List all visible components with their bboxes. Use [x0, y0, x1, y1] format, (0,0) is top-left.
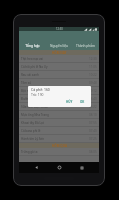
staticText: 12:30: [89, 57, 97, 61]
staticText: Đường trắng RE: [21, 97, 44, 101]
staticText: Nguyên liệu: [50, 44, 68, 48]
staticText: HÔM QUA: [52, 144, 67, 148]
staticText: 08:40: [89, 97, 97, 101]
button[interactable]: HỦY: [64, 99, 75, 105]
staticText: Sữa tươi Mộc Châu: [21, 105, 48, 109]
staticText: Rau cải xanh: [21, 73, 39, 77]
staticText: 09:12: [89, 89, 97, 93]
staticText: Bột mì số 13: [21, 89, 39, 93]
staticText: Thịt heo nạc vai: [21, 57, 44, 61]
button[interactable]: Bột mì số 13: [19, 87, 99, 94]
staticText: HÔM NAY: [52, 51, 67, 55]
staticText: Trứng gà ta: [21, 150, 38, 154]
staticText: 09:48: [89, 81, 97, 85]
button[interactable]: Thịt heo nạc vai: [19, 55, 99, 62]
staticText: 08:05: [89, 150, 97, 154]
button[interactable]: Home: [55, 163, 64, 172]
button[interactable]: Cá basa phi lê: [19, 127, 99, 134]
button[interactable]: Tổng hợp: [19, 42, 45, 50]
staticText: Tổng hợp: [25, 44, 40, 48]
button[interactable]: OK: [78, 99, 87, 105]
button[interactable]: Đường trắng RE: [19, 95, 99, 102]
staticText: Thành phẩm: [76, 44, 95, 48]
staticText: Cà phê: 160: [31, 87, 50, 92]
staticText: Cá hồi phi lê Na Uy: [21, 65, 48, 69]
button[interactable]: Hành tím Lý Sơn: [19, 135, 99, 142]
button[interactable]: Thành phẩm: [72, 42, 99, 50]
staticText: Cá basa phi lê: [21, 129, 41, 133]
button[interactable]: Mực ống Nha Trang: [19, 111, 99, 118]
button[interactable]: Cá hồi phi lê Na Uy: [19, 63, 99, 70]
staticText: OK: [80, 100, 85, 104]
button[interactable]: Rau cải xanh: [19, 71, 99, 78]
staticText: 08:22: [89, 105, 97, 109]
staticText: Khoai tây Đà Lạt: [21, 121, 44, 125]
button[interactable]: Sữa tươi Mộc Châu: [19, 103, 99, 110]
staticText: Mực ống Nha Trang: [21, 113, 49, 117]
staticText: Hành tím Lý Sơn: [21, 137, 45, 141]
button[interactable]: Khoai tây Đà Lạt: [19, 119, 99, 126]
staticText: 10:22: [89, 73, 97, 77]
staticText: Tôm sú: [21, 81, 32, 85]
staticText: 08:10: [89, 113, 97, 117]
staticText: Trà: 190: [31, 92, 44, 97]
staticText: 07:40: [89, 129, 97, 133]
staticText: 12:30: [56, 27, 63, 31]
staticText: HỦY: [66, 100, 73, 104]
button[interactable]: Trứng gà ta: [19, 148, 99, 155]
button[interactable]: Back: [32, 163, 41, 172]
button[interactable]: Recents: [77, 163, 86, 172]
button[interactable]: Nguyên liệu: [45, 42, 72, 50]
